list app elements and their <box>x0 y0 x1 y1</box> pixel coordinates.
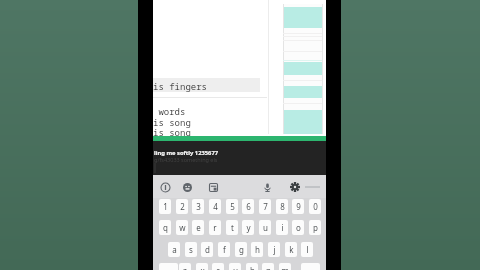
button[interactable]: f <box>218 242 230 257</box>
staticText: 1 <box>163 201 168 212</box>
staticText: i <box>281 222 284 233</box>
button[interactable]: c <box>212 263 224 270</box>
staticText: z <box>183 265 187 270</box>
staticText: d <box>205 244 210 255</box>
staticText: n <box>266 265 271 270</box>
button[interactable]: e <box>192 220 204 235</box>
staticText: l <box>306 244 309 255</box>
staticText: words <box>153 105 186 117</box>
button[interactable]: 2 <box>176 199 188 214</box>
staticText: h <box>255 244 260 255</box>
button[interactable]: k <box>285 242 297 257</box>
staticText: q <box>163 222 168 233</box>
button[interactable]: u <box>259 220 271 235</box>
button[interactable]: Backspace <box>301 263 320 270</box>
button[interactable]: g <box>235 242 247 257</box>
button[interactable]: m <box>279 263 291 270</box>
button[interactable]: s <box>185 242 197 257</box>
staticText: 2 <box>180 201 185 212</box>
staticText: s <box>189 244 193 255</box>
staticText: 9 <box>296 201 301 212</box>
staticText: is song <box>153 116 191 128</box>
button[interactable]: 9 <box>292 199 304 214</box>
button[interactable]: o <box>292 220 304 235</box>
staticText: k <box>289 244 294 255</box>
staticText: y <box>246 222 251 233</box>
button[interactable]: z <box>179 263 191 270</box>
staticText: 0 <box>313 201 318 212</box>
staticText: 7 <box>263 201 268 212</box>
button[interactable]: t <box>226 220 238 235</box>
staticText: 5 <box>230 201 235 212</box>
button[interactable]: 8 <box>276 199 288 214</box>
staticText: o <box>296 222 301 233</box>
button[interactable]: n <box>262 263 274 270</box>
button[interactable]: l <box>301 242 313 257</box>
button[interactable]: 7 <box>259 199 271 214</box>
staticText: f <box>223 244 226 255</box>
button[interactable]: b <box>246 263 258 270</box>
button[interactable]: r <box>209 220 221 235</box>
staticText: p <box>313 222 318 233</box>
button[interactable]: Stickers <box>206 180 220 194</box>
button[interactable]: h <box>251 242 263 257</box>
staticText: 3 <box>196 201 201 212</box>
button[interactable]: Google search <box>158 180 172 194</box>
staticText: is fingers <box>153 80 208 92</box>
button[interactable]: v <box>229 263 241 270</box>
staticText: 8 <box>280 201 285 212</box>
button[interactable]: 4 <box>209 199 221 214</box>
button[interactable]: p <box>309 220 321 235</box>
button[interactable]: i <box>276 220 288 235</box>
button[interactable]: y <box>242 220 254 235</box>
button[interactable]: 0 <box>309 199 321 214</box>
button[interactable]: w <box>176 220 188 235</box>
button[interactable]: Shift <box>159 263 178 270</box>
staticText: c <box>216 265 220 270</box>
staticText: ling me softly 1235677 <box>154 149 219 157</box>
staticText: x <box>200 265 205 270</box>
button[interactable]: Settings <box>288 180 302 194</box>
staticText: u <box>263 222 268 233</box>
staticText: is song <box>153 126 191 138</box>
button[interactable]: q <box>159 220 171 235</box>
staticText: j <box>273 244 276 255</box>
staticText: g/fs43033 something els <box>154 156 218 163</box>
button[interactable]: Voice input <box>260 180 274 194</box>
button[interactable]: x <box>196 263 208 270</box>
button[interactable]: 5 <box>226 199 238 214</box>
button[interactable]: a <box>168 242 180 257</box>
staticText: g <box>239 244 244 255</box>
button[interactable]: d <box>201 242 213 257</box>
button[interactable]: 1 <box>159 199 171 214</box>
button[interactable]: j <box>268 242 280 257</box>
staticText: b <box>250 265 255 270</box>
button[interactable]: Emoji <box>180 180 194 194</box>
staticText: 4 <box>213 201 218 212</box>
staticText: w <box>179 222 186 233</box>
staticText: 6 <box>246 201 251 212</box>
staticText: r <box>213 222 217 233</box>
button[interactable]: 3 <box>192 199 204 214</box>
button[interactable]: 6 <box>242 199 254 214</box>
staticText: t <box>231 222 234 233</box>
staticText: a <box>172 244 177 255</box>
button[interactable]: More options <box>302 181 322 193</box>
staticText: m <box>281 265 289 270</box>
staticText: e <box>196 222 201 233</box>
staticText: v <box>233 265 238 270</box>
